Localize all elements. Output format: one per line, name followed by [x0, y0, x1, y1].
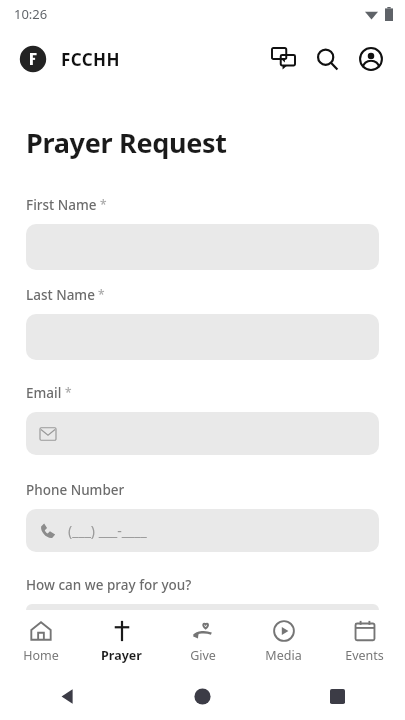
staticText: (___) ___-____	[68, 521, 147, 540]
staticText: Last Name	[26, 286, 95, 304]
staticText: First Name	[26, 196, 97, 214]
staticText: FCCHH	[61, 48, 120, 71]
staticText: Events	[345, 647, 384, 664]
staticText: *	[100, 196, 107, 212]
staticText: Phone Number	[26, 481, 125, 499]
button[interactable]: Media	[243, 610, 324, 673]
button[interactable]: Account	[349, 37, 393, 81]
button[interactable]	[26, 412, 379, 455]
staticText: Prayer	[101, 647, 142, 664]
button[interactable]: Prayer	[81, 610, 162, 673]
staticText: How can we pray for you?	[26, 576, 192, 594]
button[interactable]: (___) ___-____	[26, 509, 379, 552]
button[interactable]: Events	[324, 610, 405, 673]
button[interactable]: Messages	[261, 37, 305, 81]
button[interactable]: Back	[0, 673, 135, 720]
staticText: Give	[190, 647, 216, 664]
staticText: *	[65, 384, 72, 400]
button[interactable]: Home	[0, 610, 81, 673]
staticText: Prayer Request	[26, 124, 227, 161]
staticText: Home	[23, 647, 59, 664]
button[interactable]: Recent apps	[270, 673, 405, 720]
button[interactable]: Search	[305, 37, 349, 81]
staticText: Email	[26, 384, 62, 402]
staticText: 10:26	[14, 5, 48, 23]
button[interactable]: FCCHH	[18, 44, 120, 74]
button[interactable]: Home	[135, 673, 270, 720]
staticText: *	[98, 286, 105, 302]
button[interactable]: Give	[162, 610, 243, 673]
staticText: Media	[265, 647, 302, 664]
